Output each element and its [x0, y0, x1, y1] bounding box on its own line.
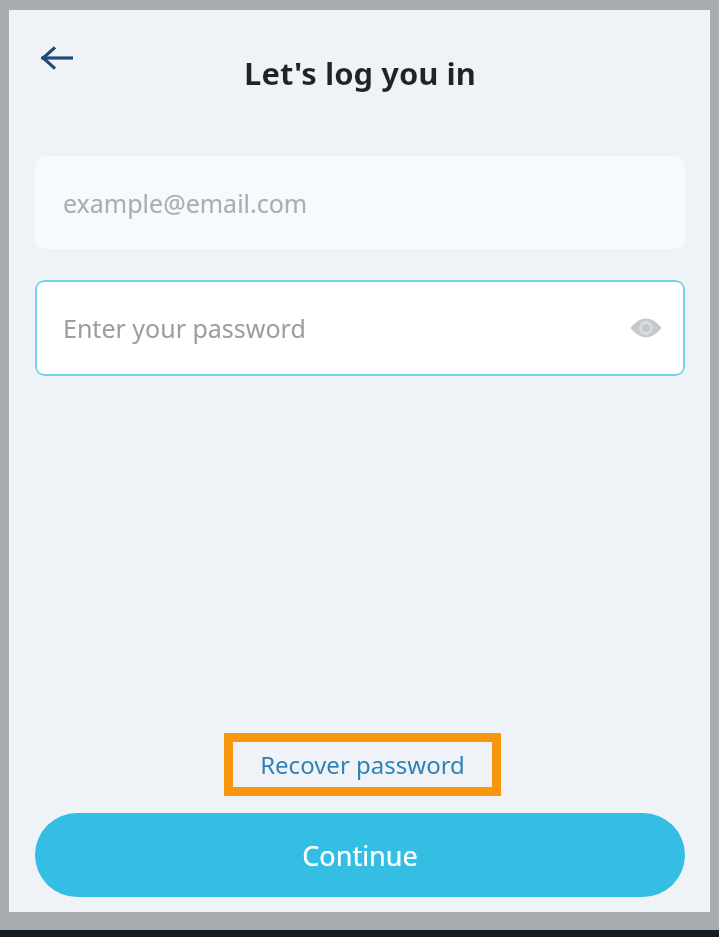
- button[interactable]: Recover password: [233, 742, 492, 787]
- button[interactable]: Enter your password: [35, 280, 685, 376]
- button[interactable]: Back: [31, 32, 83, 84]
- staticText: example@email.com: [63, 186, 308, 220]
- staticText: Recover password: [260, 748, 465, 781]
- button[interactable]: Show password: [619, 301, 673, 355]
- button[interactable]: example@email.com: [35, 156, 685, 249]
- staticText: Let's log you in: [244, 52, 476, 94]
- staticText: Enter your password: [63, 311, 306, 345]
- staticText: Continue: [302, 837, 418, 874]
- button[interactable]: Continue: [35, 813, 685, 897]
